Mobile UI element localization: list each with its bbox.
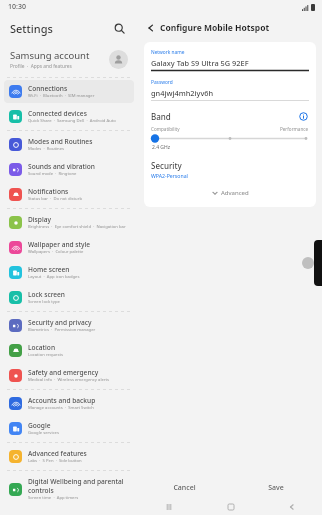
staticText: Digital Wellbeing and parental controls xyxy=(28,477,129,495)
staticText: Accounts and backup xyxy=(28,396,96,405)
staticText: Display xyxy=(28,215,51,224)
button[interactable]: Search xyxy=(110,19,128,37)
button[interactable]: Band information xyxy=(297,110,309,122)
staticText: Location xyxy=(28,343,56,352)
button[interactable]: Home xyxy=(200,499,261,515)
staticText: Notifications xyxy=(28,187,69,196)
button[interactable]: Edge panel handle xyxy=(314,240,322,286)
staticText: 2.4 GHz xyxy=(152,144,171,151)
staticText: Location requests xyxy=(28,352,63,358)
button[interactable]: Recents xyxy=(138,499,200,515)
staticText: Biometrics · Permission manager xyxy=(28,327,96,333)
staticText: Security xyxy=(151,160,182,171)
staticText: Security and privacy xyxy=(28,318,92,327)
staticText: Google xyxy=(28,421,51,430)
button[interactable]: Password xyxy=(151,79,309,101)
staticText: Advanced features xyxy=(28,449,87,458)
staticText: gn4jwj4mh2iyv6h xyxy=(151,88,214,98)
staticText: Profile · Apps and features xyxy=(10,63,72,70)
staticText: Wallpapers · Colour palette xyxy=(28,249,84,255)
button[interactable]: Back xyxy=(142,19,160,37)
button[interactable]: Modes and Routines xyxy=(4,133,134,156)
staticText: Google services xyxy=(28,430,59,436)
staticText: Brightness · Eye comfort shield · Naviga… xyxy=(28,224,126,230)
button[interactable]: Connected devices xyxy=(4,105,134,128)
staticText: Screen lock type xyxy=(28,299,60,305)
staticText: Home screen xyxy=(28,265,70,274)
staticText: Network name xyxy=(151,49,185,56)
button[interactable]: Security and privacy xyxy=(4,314,134,337)
staticText: Connected devices xyxy=(28,109,87,118)
staticText: Labs · S Pen · Side button xyxy=(28,458,82,464)
button[interactable]: Accounts and backup xyxy=(4,392,134,415)
button[interactable]: Advanced features xyxy=(4,445,134,468)
button[interactable]: Google xyxy=(4,417,134,440)
button[interactable]: Back xyxy=(261,499,322,515)
staticText: Settings xyxy=(10,21,53,36)
button[interactable]: Digital Wellbeing and parental controls xyxy=(4,473,134,505)
staticText: 10:30 xyxy=(8,2,26,12)
staticText: Modes and Routines xyxy=(28,137,93,146)
staticText: Cancel xyxy=(173,483,196,493)
button[interactable]: Notifications xyxy=(4,183,134,206)
staticText: Wi-Fi · Bluetooth · SIM manager xyxy=(28,93,95,99)
staticText: Sounds and vibration xyxy=(28,162,95,171)
staticText: Status bar · Do not disturb xyxy=(28,196,82,202)
staticText: Modes · Routines xyxy=(28,146,65,152)
staticText: Configure Mobile Hotspot xyxy=(160,22,270,34)
staticText: Sound mode · Ringtone xyxy=(28,171,77,177)
staticText: Galaxy Tab S9 Ultra 5G 92EF xyxy=(151,58,249,68)
button[interactable]: Sounds and vibration xyxy=(4,158,134,181)
staticText: Advanced xyxy=(221,189,249,197)
button[interactable]: Security xyxy=(151,160,309,179)
button[interactable]: Wallpaper and style xyxy=(4,236,134,259)
button[interactable]: Cancel xyxy=(138,477,230,499)
staticText: Password xyxy=(151,79,173,86)
button[interactable]: Network name xyxy=(151,49,309,71)
staticText: Compatibility xyxy=(151,126,180,132)
staticText: Layout · App icon badges xyxy=(28,274,80,280)
button[interactable]: Home screen xyxy=(4,261,134,284)
staticText: Screen time · App timers xyxy=(28,495,79,501)
staticText: Connections xyxy=(28,84,68,93)
staticText: Manage accounts · Smart Switch xyxy=(28,405,94,411)
button[interactable]: Lock screen xyxy=(4,286,134,309)
staticText: Band xyxy=(151,111,297,122)
button[interactable]: Connections xyxy=(4,80,134,103)
button[interactable]: Safety and emergency xyxy=(4,364,134,387)
staticText: Performance xyxy=(280,126,309,132)
staticText: Lock screen xyxy=(28,290,65,299)
button[interactable]: Samsung account xyxy=(0,42,138,76)
button[interactable]: Display xyxy=(4,211,134,234)
staticText: Safety and emergency xyxy=(28,368,99,377)
staticText: Medical info · Wireless emergency alerts xyxy=(28,377,110,383)
staticText: Wallpaper and style xyxy=(28,240,91,249)
staticText: Samsung account xyxy=(10,49,90,62)
staticText: Save xyxy=(268,483,284,493)
button[interactable]: Location xyxy=(4,339,134,362)
staticText: WPA2-Personal xyxy=(151,172,188,179)
button[interactable]: Advanced xyxy=(151,189,309,197)
staticText: Quick Share · Samsung DeX · Android Auto xyxy=(28,118,116,124)
button[interactable] xyxy=(151,134,309,143)
button[interactable]: Save xyxy=(230,477,322,499)
